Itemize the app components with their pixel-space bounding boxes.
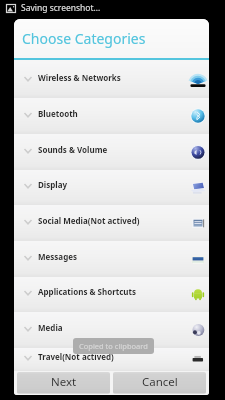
button[interactable]: Media <box>14 312 209 348</box>
button[interactable]: Next <box>17 372 110 394</box>
staticText: Travel(Not actived) <box>38 351 114 362</box>
staticText: Saving screenshot… <box>21 2 101 14</box>
button[interactable]: Bluetooth <box>14 98 209 134</box>
button[interactable]: Applications & Shortcuts <box>14 277 209 312</box>
staticText: Social Media(Not actived) <box>38 215 140 226</box>
staticText: Wireless & Networks <box>38 72 121 83</box>
staticText: Display <box>38 179 68 190</box>
staticText: Copied to clipboard <box>79 341 148 351</box>
staticText: Sounds & Volume <box>38 144 108 155</box>
staticText: Media <box>38 322 63 333</box>
staticText: Bluetooth <box>38 108 78 119</box>
button[interactable]: Messages <box>14 241 209 277</box>
staticText: Cancel <box>142 374 178 390</box>
button[interactable]: Travel(Not actived) <box>14 348 209 371</box>
staticText: Next <box>51 374 77 390</box>
staticText: Choose Categories <box>22 29 146 48</box>
button[interactable]: Display <box>14 170 209 205</box>
button[interactable]: Cancel <box>113 372 206 394</box>
staticText: Applications & Shortcuts <box>38 286 137 297</box>
button[interactable]: Sounds & Volume <box>14 134 209 170</box>
staticText: Messages <box>38 251 77 262</box>
button[interactable]: Wireless & Networks <box>14 62 209 98</box>
button[interactable]: Social Media(Not actived) <box>14 205 209 241</box>
